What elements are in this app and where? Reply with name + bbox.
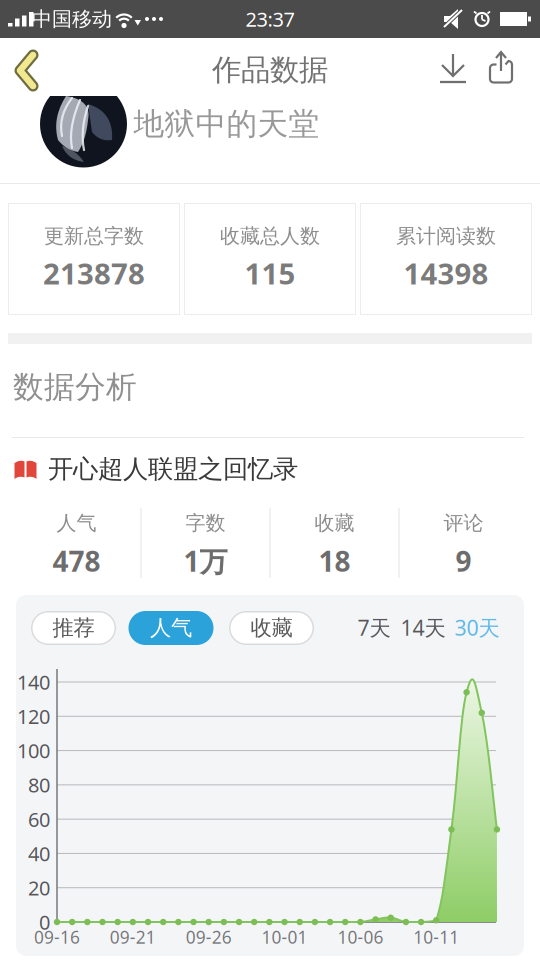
staticText: 478 <box>52 542 100 580</box>
staticText: 9 <box>455 542 471 580</box>
button[interactable]: 30天 <box>454 613 499 642</box>
button[interactable]: 7天 <box>357 613 390 642</box>
staticText: 20 <box>28 874 50 901</box>
staticText: 地狱中的天堂 <box>133 105 319 143</box>
staticText: 10-11 <box>413 925 459 948</box>
button[interactable]: Share <box>487 38 515 96</box>
staticText: 100 <box>17 737 50 764</box>
staticText: 作品数据 <box>212 52 328 88</box>
staticText: 140 <box>17 669 50 695</box>
staticText: 人气 <box>56 511 96 535</box>
staticText: 收藏 <box>250 615 292 641</box>
staticText: 18 <box>318 542 350 580</box>
staticText: 收藏 <box>314 511 354 535</box>
staticText: 更新总字数 <box>44 224 144 248</box>
button[interactable]: 收藏 <box>229 611 314 645</box>
staticText: 7天 <box>357 613 390 642</box>
staticText: 14398 <box>403 253 488 292</box>
staticText: 1万 <box>183 542 227 580</box>
staticText: 0 <box>39 909 50 935</box>
staticText: 推荐 <box>52 615 94 641</box>
button[interactable]: Download <box>437 38 469 96</box>
staticText: 字数 <box>185 511 225 535</box>
staticText: 中国移动 <box>32 7 112 31</box>
staticText: 收藏总人数 <box>220 224 320 248</box>
staticText: 数据分析 <box>13 368 137 406</box>
staticText: 人气 <box>150 615 192 641</box>
staticText: 开心超人联盟之回忆录 <box>48 453 298 484</box>
staticText: 120 <box>17 703 50 730</box>
staticText: 10-01 <box>262 925 308 948</box>
button[interactable]: Back <box>0 38 54 96</box>
staticText: 23:37 <box>245 6 294 32</box>
staticText: 09-16 <box>34 925 80 948</box>
staticText: 评论 <box>443 511 483 535</box>
button[interactable]: 推荐 <box>31 611 116 645</box>
button[interactable]: 人气 <box>128 611 213 645</box>
staticText: 累计阅读数 <box>396 224 496 248</box>
staticText: 80 <box>28 772 50 798</box>
staticText: 115 <box>244 253 295 292</box>
button[interactable]: 14天 <box>400 613 445 642</box>
staticText: 10-06 <box>337 925 383 948</box>
staticText: 09-26 <box>186 925 232 948</box>
staticText: 60 <box>28 806 50 832</box>
staticText: 14天 <box>400 613 445 642</box>
staticText: 30天 <box>454 613 499 642</box>
staticText: 40 <box>28 840 50 867</box>
staticText: 213878 <box>43 253 145 292</box>
staticText: 09-21 <box>110 925 156 948</box>
